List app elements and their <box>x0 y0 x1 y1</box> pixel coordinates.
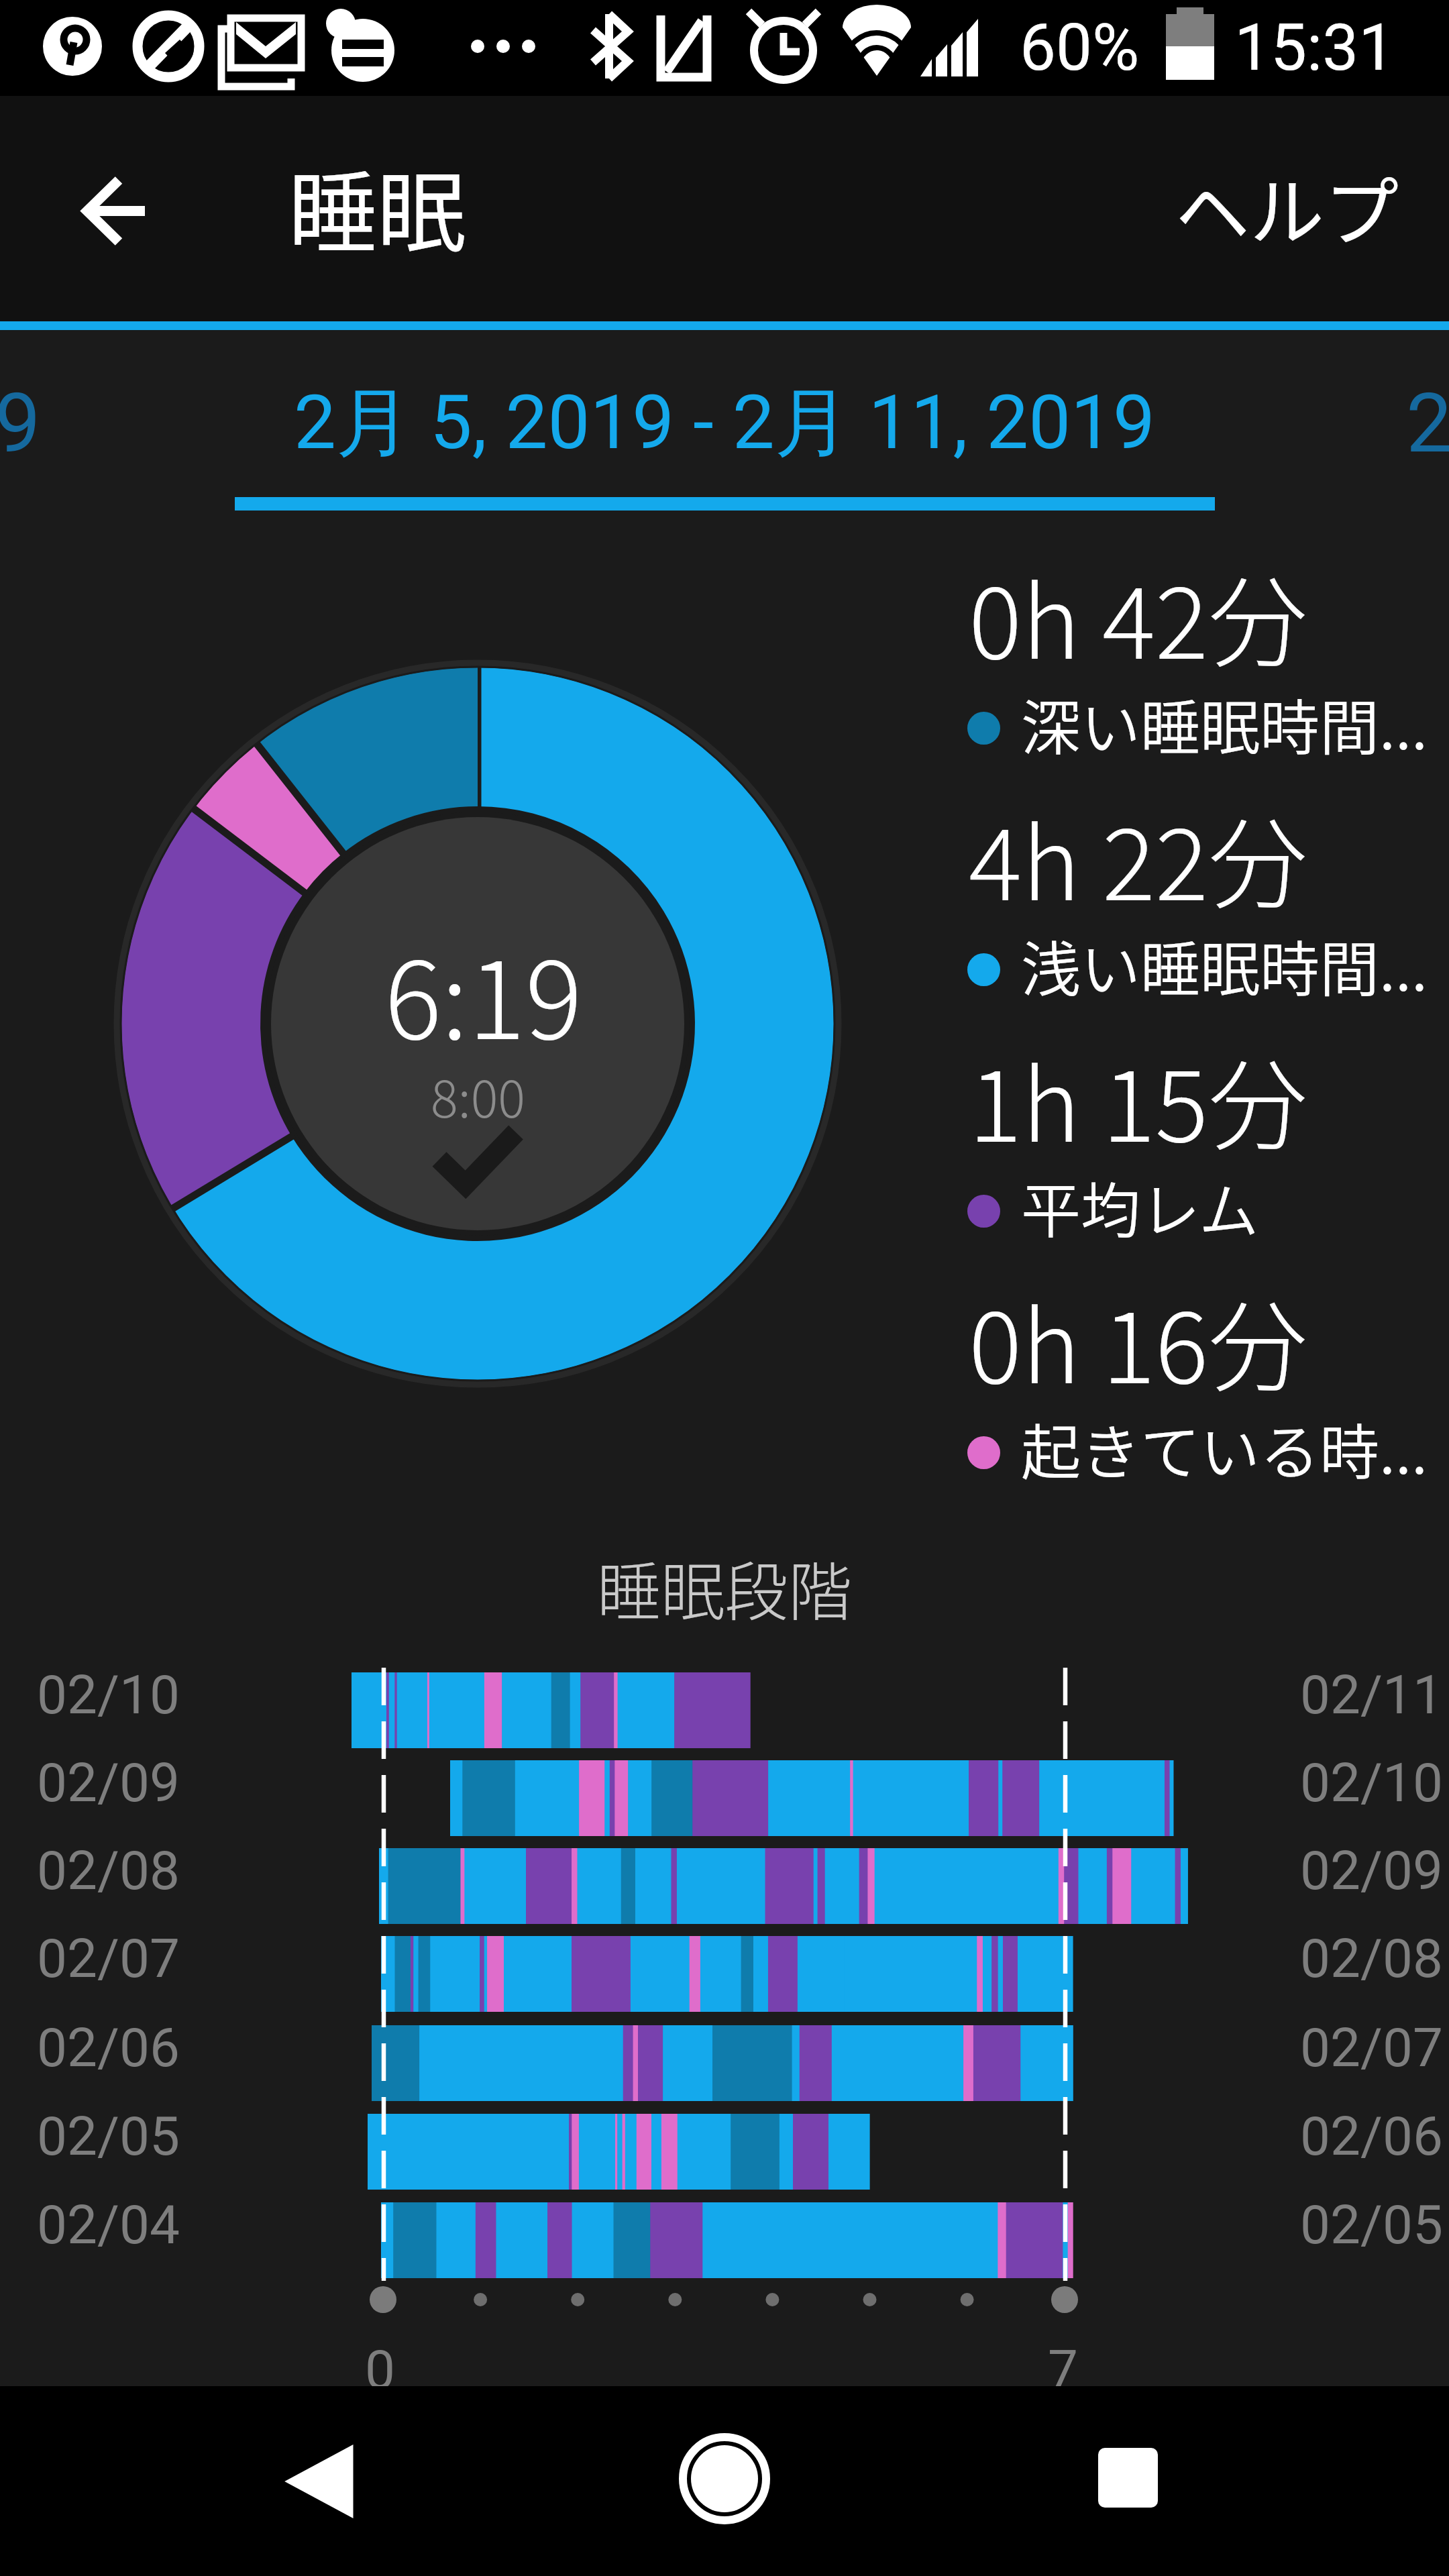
staticText: 0h 42分 <box>969 543 1308 687</box>
staticText: 9 <box>0 376 41 472</box>
staticText: 02/10 <box>1300 1752 1443 1815</box>
staticText: 平均レム <box>1021 1163 1259 1250</box>
button[interactable]: 0h 42分 <box>959 541 1449 762</box>
button[interactable]: 02/08 <box>0 1842 1449 1930</box>
button[interactable]: 02/09 <box>0 1754 1449 1842</box>
staticText: 2 <box>1406 376 1449 472</box>
staticText: 02/09 <box>37 1752 180 1815</box>
button[interactable]: 0h 16分 <box>959 1265 1449 1487</box>
staticText: 睡眠段階 <box>597 1542 853 1634</box>
button[interactable]: 02/06 <box>0 2019 1449 2107</box>
button[interactable]: Previous week <box>0 331 121 523</box>
staticText: 7 <box>1048 2339 1078 2402</box>
staticText: 15:31 <box>1234 10 1395 86</box>
button[interactable]: ヘルプ <box>1127 113 1449 301</box>
button[interactable]: 02/07 <box>0 1930 1449 2018</box>
button[interactable]: Back <box>236 2398 404 2565</box>
button[interactable]: 1h 15分 <box>959 1024 1449 1245</box>
staticText: 6:19 <box>384 916 582 1070</box>
button[interactable]: 02/05 <box>0 2108 1449 2196</box>
staticText: 02/06 <box>1300 2105 1443 2168</box>
staticText: 0h 16分 <box>969 1268 1308 1411</box>
staticText: 02/06 <box>37 2017 180 2080</box>
staticText: 浅い睡眠時間... <box>1021 922 1428 1008</box>
button[interactable]: 02/04 <box>0 2196 1449 2284</box>
staticText: 起きている時... <box>1021 1405 1428 1491</box>
button[interactable]: 4h 22分 <box>959 782 1449 1004</box>
staticText: 02/08 <box>1300 1927 1443 1990</box>
staticText: 02/05 <box>37 2105 180 2168</box>
staticText: 02/10 <box>37 1664 180 1727</box>
button[interactable]: Back <box>40 137 184 281</box>
button[interactable]: 02/10 <box>0 1666 1449 1754</box>
staticText: 2月 5, 2019 - 2月 11, 2019 <box>294 376 1156 470</box>
staticText: 02/09 <box>1300 1839 1443 1902</box>
staticText: 02/08 <box>37 1839 180 1902</box>
button[interactable]: 2月 5, 2019 - 2月 11, 2019 <box>221 331 1228 523</box>
staticText: 02/11 <box>1300 1664 1443 1727</box>
staticText: 8:00 <box>431 1059 525 1132</box>
staticText: 睡眠 <box>288 142 466 270</box>
staticText: 02/07 <box>37 1927 180 1990</box>
staticText: 深い睡眠時間... <box>1021 680 1428 767</box>
staticText: 1h 15分 <box>969 1026 1308 1170</box>
staticText: 02/07 <box>1300 2017 1443 2080</box>
button[interactable]: Home <box>641 2398 808 2565</box>
staticText: 0 <box>365 2339 395 2402</box>
button[interactable]: Next week <box>1322 331 1449 523</box>
staticText: ヘルプ <box>1175 153 1399 261</box>
staticText: 02/04 <box>37 2194 180 2257</box>
staticText: 60% <box>1020 10 1140 86</box>
staticText: 4h 22分 <box>969 785 1308 928</box>
staticText: 02/05 <box>1300 2194 1443 2257</box>
button[interactable]: Recents <box>1042 2398 1210 2565</box>
